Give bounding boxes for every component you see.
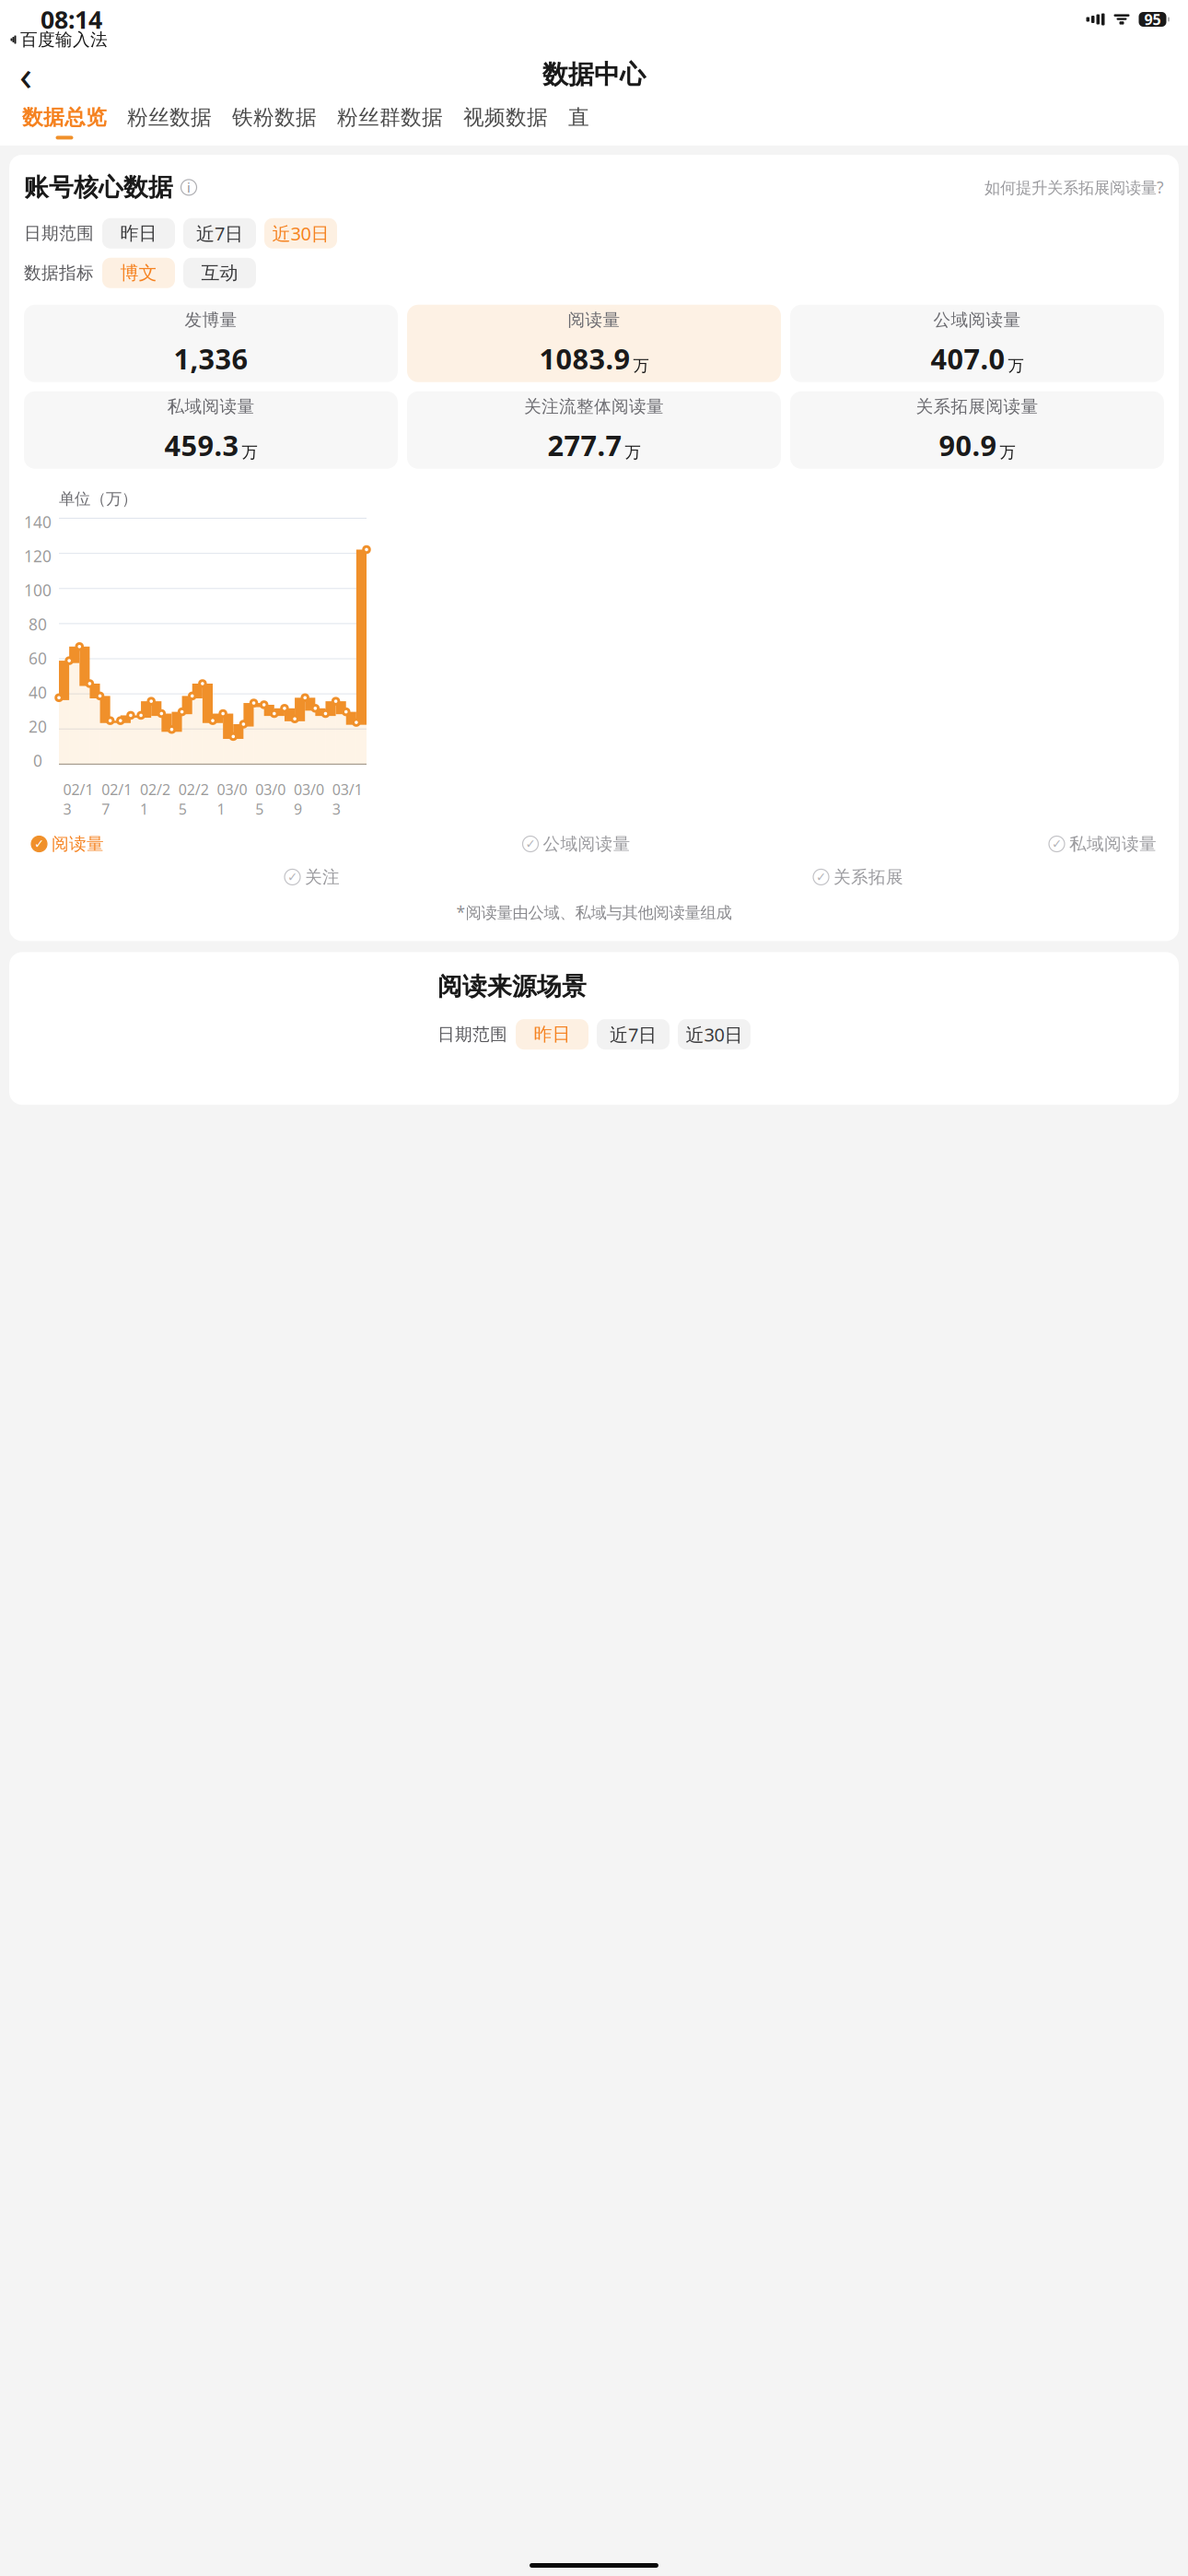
- button[interactable]: 如何提升关系拓展阅读量?: [984, 177, 1164, 198]
- staticText: 数据中心: [542, 59, 646, 90]
- staticText: 关注流整体阅读量: [524, 396, 664, 417]
- button[interactable]: 私域阅读量: [24, 391, 398, 469]
- button[interactable]: 发博量: [24, 305, 398, 382]
- button[interactable]: 直: [558, 101, 600, 144]
- staticText: 08:14: [41, 3, 102, 36]
- button[interactable]: 关注流整体阅读量: [407, 391, 781, 469]
- button[interactable]: 关系拓展阅读量: [790, 391, 1164, 469]
- staticText: 1,336: [174, 340, 248, 377]
- staticText: 如何提升关系拓展阅读量?: [984, 177, 1164, 198]
- staticText: 日期范围: [437, 1024, 507, 1045]
- staticText: 近7日: [196, 221, 243, 246]
- staticText: 40: [29, 682, 47, 703]
- staticText: 阅读量: [568, 309, 620, 331]
- staticText: 关系拓展阅读量: [916, 396, 1038, 417]
- staticText: 20: [29, 716, 47, 737]
- staticText: 02/13: [63, 779, 93, 819]
- button[interactable]: 博文: [102, 258, 175, 288]
- button[interactable]: 铁粉数据: [222, 101, 327, 144]
- staticText: 近7日: [610, 1022, 657, 1047]
- staticText: 近30日: [686, 1022, 743, 1047]
- staticText: 100: [24, 580, 52, 601]
- staticText: 阅读量: [52, 833, 104, 854]
- staticText: 万: [1000, 443, 1015, 462]
- staticText: 阅读来源场景: [437, 971, 587, 1002]
- staticText: 03/01: [217, 779, 247, 819]
- staticText: 万: [242, 443, 257, 462]
- staticText: 万: [1008, 356, 1024, 376]
- staticText: 私域阅读量: [167, 396, 255, 417]
- staticText: *阅读量由公域、私域与其他阅读量组成: [456, 901, 732, 923]
- staticText: 铁粉数据: [232, 105, 317, 130]
- staticText: 02/25: [178, 779, 209, 819]
- staticText: ✓: [816, 870, 826, 884]
- staticText: 公域阅读量: [933, 309, 1021, 331]
- staticText: 单位（万）: [59, 489, 137, 509]
- staticText: 数据总览: [22, 105, 107, 130]
- button[interactable]: ✓: [523, 833, 630, 854]
- staticText: 昨日: [534, 1023, 571, 1046]
- staticText: 互动: [201, 262, 238, 284]
- button[interactable]: 数据总览: [12, 101, 117, 144]
- button[interactable]: 昨日: [102, 218, 175, 249]
- staticText: ✓: [1052, 837, 1062, 851]
- staticText: 关系拓展: [833, 866, 903, 888]
- button[interactable]: 近7日: [183, 218, 256, 249]
- staticText: 发博量: [185, 309, 237, 331]
- staticText: 277.7: [547, 426, 622, 464]
- staticText: 视频数据: [463, 105, 548, 130]
- button[interactable]: ✓: [1049, 833, 1157, 854]
- button[interactable]: 公域阅读量: [790, 305, 1164, 382]
- staticText: ‹: [19, 47, 32, 102]
- staticText: 粉丝数据: [127, 105, 212, 130]
- staticText: 140: [24, 511, 52, 533]
- button[interactable]: 近30日: [678, 1019, 751, 1050]
- staticText: ✓: [287, 870, 297, 884]
- staticText: 1083.9: [539, 340, 630, 377]
- staticText: 02/21: [140, 779, 170, 819]
- staticText: 账号核心数据: [24, 172, 173, 203]
- staticText: 博文: [120, 262, 157, 284]
- staticText: 120: [24, 545, 52, 567]
- staticText: 公域阅读量: [543, 833, 630, 854]
- staticText: 02/17: [101, 779, 132, 819]
- staticText: 03/05: [255, 779, 286, 819]
- staticText: 60: [29, 648, 47, 669]
- button[interactable]: ✓: [31, 833, 104, 854]
- button[interactable]: 近7日: [597, 1019, 670, 1050]
- button[interactable]: 近30日: [264, 218, 337, 249]
- staticText: 数据指标: [24, 262, 94, 283]
- staticText: 近30日: [272, 221, 329, 246]
- button[interactable]: 视频数据: [453, 101, 558, 144]
- staticText: 459.3: [164, 426, 239, 464]
- staticText: 粉丝群数据: [337, 105, 443, 130]
- staticText: 03/13: [332, 779, 362, 819]
- staticText: 407.0: [931, 340, 1005, 377]
- staticText: 昨日: [120, 222, 157, 245]
- staticText: 80: [29, 614, 47, 635]
- staticText: 万: [625, 443, 641, 462]
- staticText: 关注: [305, 866, 340, 888]
- staticText: 万: [633, 356, 649, 376]
- button[interactable]: 粉丝群数据: [327, 101, 453, 144]
- staticText: 直: [568, 105, 589, 130]
- staticText: 私域阅读量: [1069, 833, 1157, 854]
- button[interactable]: 粉丝数据: [117, 101, 222, 144]
- button[interactable]: 互动: [183, 258, 256, 288]
- button[interactable]: ✓: [285, 866, 340, 888]
- button[interactable]: 阅读量: [407, 305, 781, 382]
- staticText: 0: [33, 750, 42, 771]
- button[interactable]: 返回: [4, 53, 48, 97]
- button[interactable]: ✓: [813, 866, 903, 888]
- button[interactable]: 数据说明: [180, 178, 198, 197]
- staticText: i: [187, 178, 191, 196]
- staticText: 95: [1144, 10, 1161, 29]
- staticText: 90.9: [939, 426, 997, 464]
- staticText: ✓: [34, 837, 44, 851]
- button[interactable]: 昨日: [516, 1019, 588, 1050]
- staticText: 03/09: [294, 779, 324, 819]
- staticText: 日期范围: [24, 223, 94, 244]
- staticText: 百度输入法: [20, 29, 108, 50]
- staticText: ✓: [525, 837, 536, 851]
